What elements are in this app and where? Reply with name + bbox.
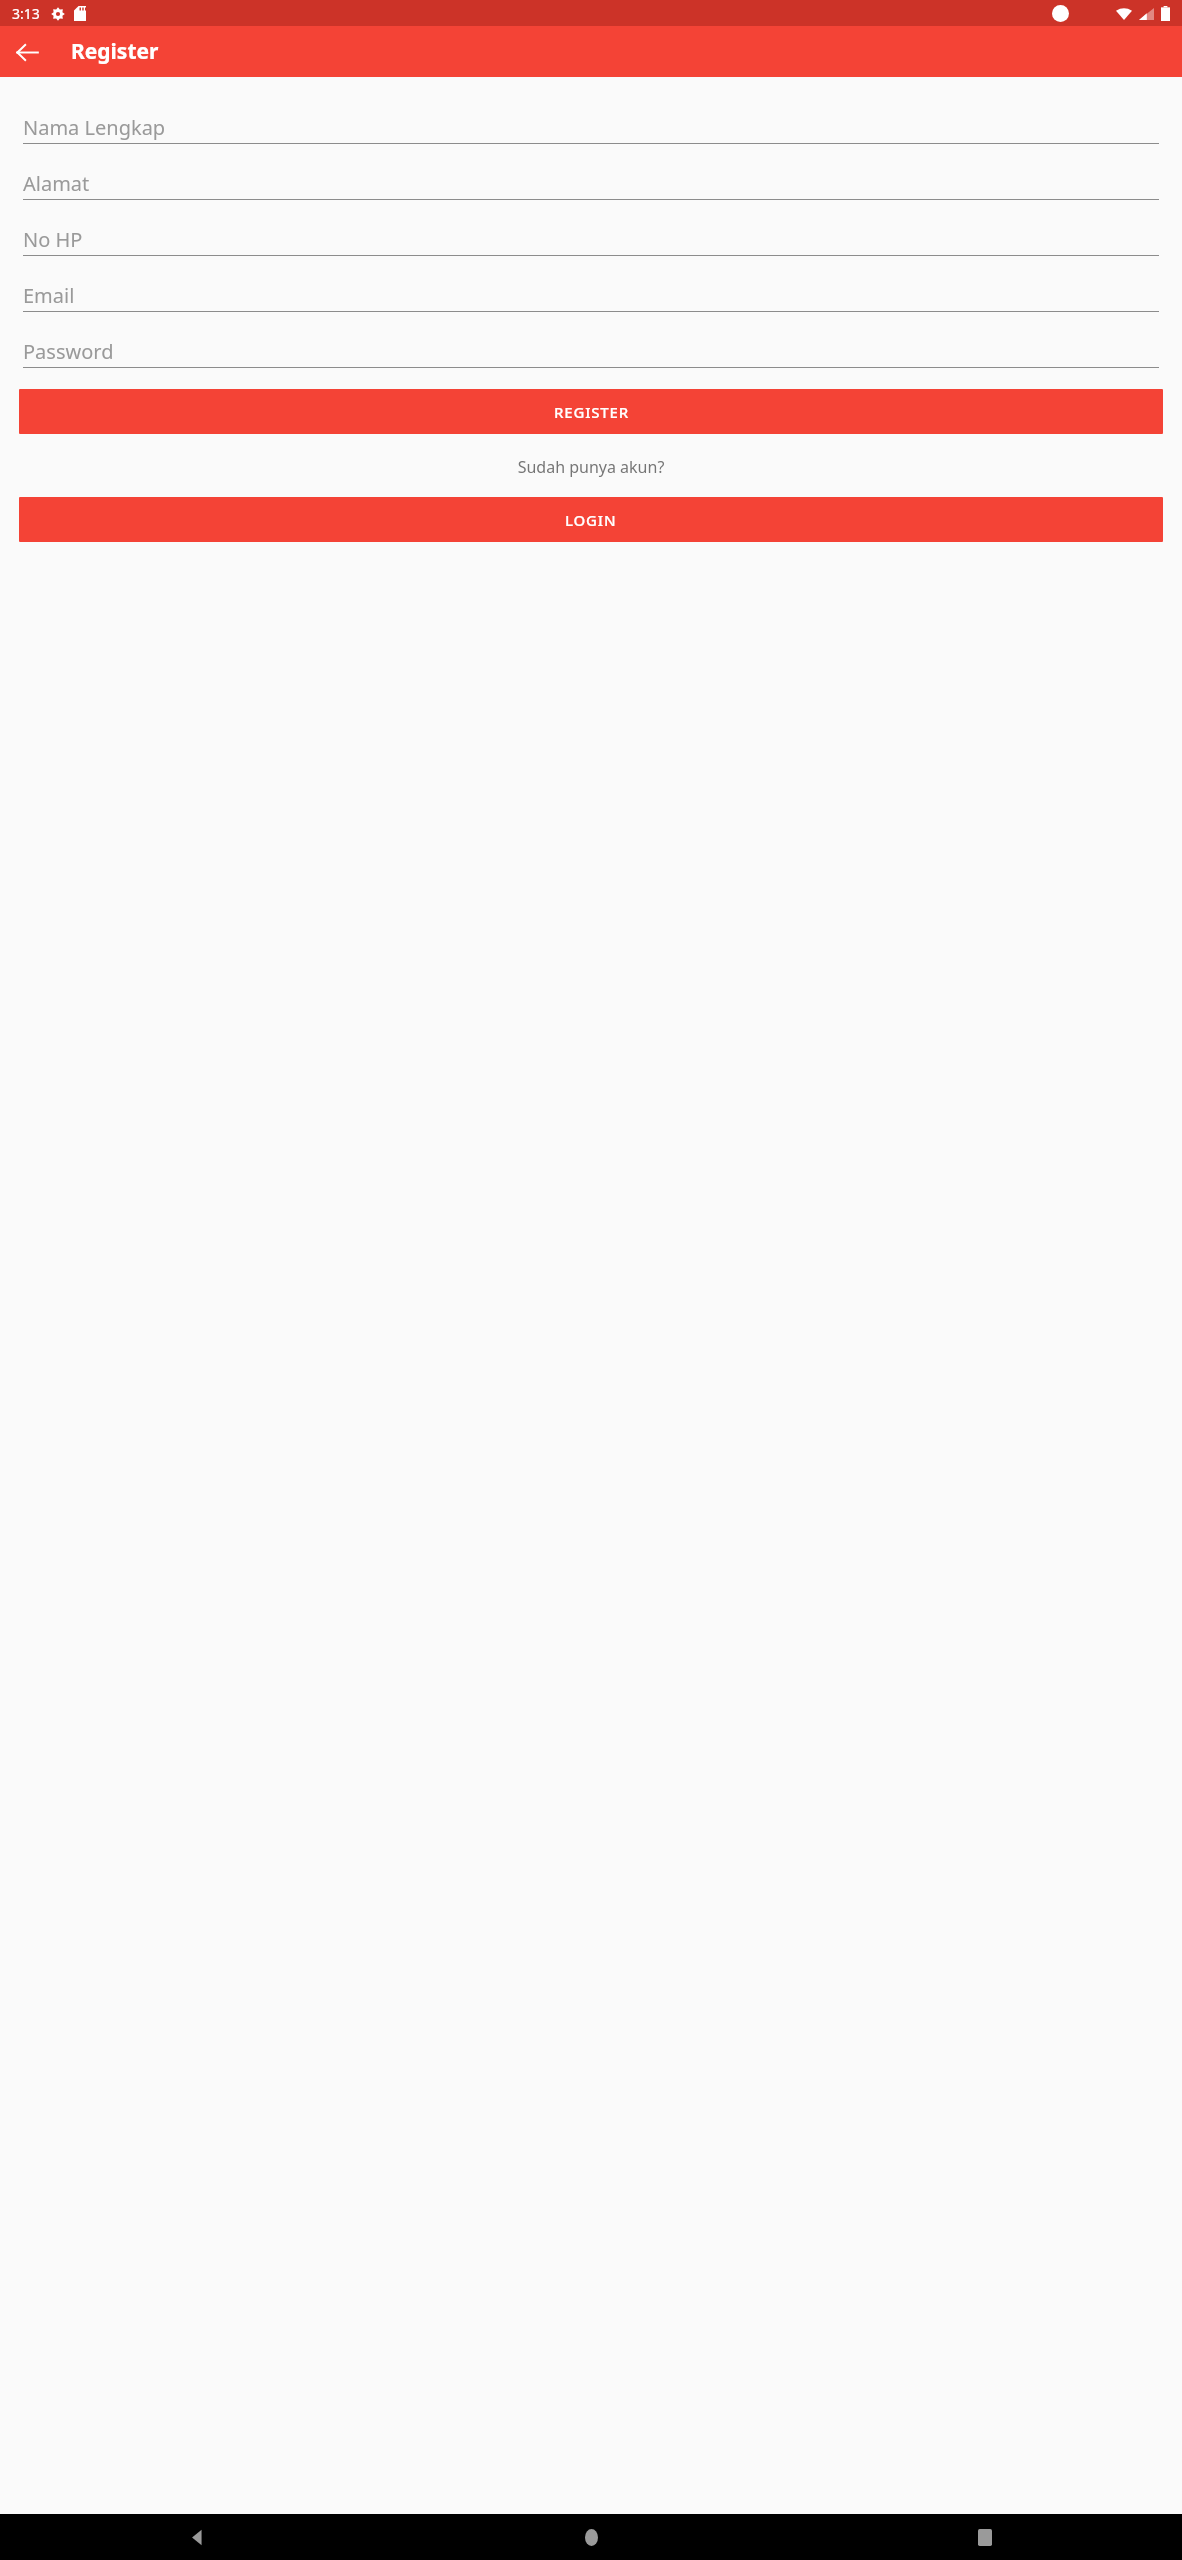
button[interactable]: LOGIN bbox=[19, 497, 1163, 542]
staticText: Email bbox=[23, 282, 75, 309]
staticText: Register bbox=[71, 37, 159, 66]
staticText: Alamat bbox=[23, 170, 90, 197]
staticText: No HP bbox=[23, 226, 83, 253]
button[interactable]: Recent apps bbox=[788, 2514, 1182, 2560]
button[interactable]: No HP bbox=[23, 215, 1159, 256]
staticText: Nama Lengkap bbox=[23, 114, 166, 141]
button[interactable]: REGISTER bbox=[19, 389, 1163, 434]
button[interactable]: Home bbox=[394, 2514, 788, 2560]
staticText: Sudah punya akun? bbox=[0, 456, 1182, 478]
button[interactable]: Alamat bbox=[23, 159, 1159, 200]
button[interactable]: Back bbox=[0, 2514, 394, 2560]
button[interactable]: Email bbox=[23, 271, 1159, 312]
staticText: Password bbox=[23, 338, 114, 365]
button[interactable]: Password bbox=[23, 327, 1159, 368]
button[interactable]: Back bbox=[5, 30, 49, 74]
staticText: LOGIN bbox=[565, 510, 617, 530]
button[interactable]: Nama Lengkap bbox=[23, 103, 1159, 144]
staticText: REGISTER bbox=[554, 402, 629, 422]
staticText: 3:13 bbox=[12, 4, 40, 23]
